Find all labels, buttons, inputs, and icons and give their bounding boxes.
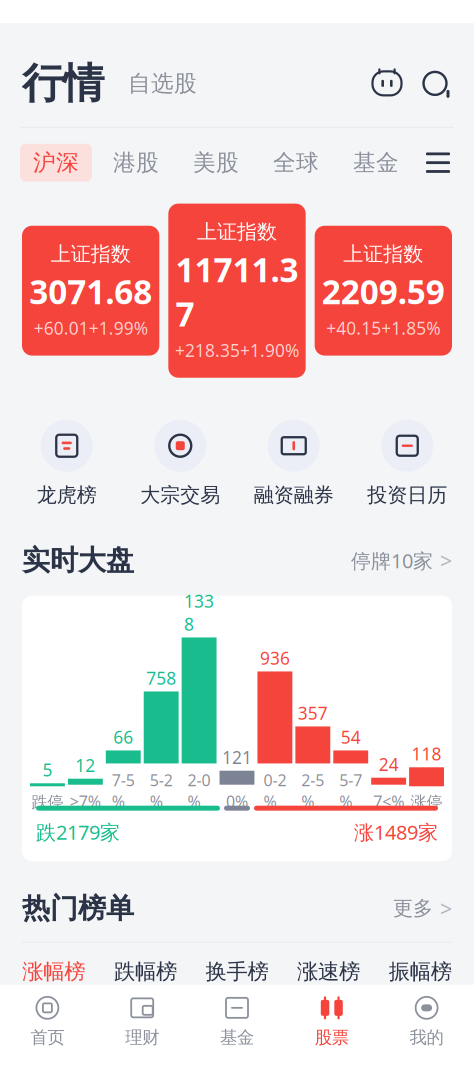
staticText: 涨幅榜 (22, 959, 85, 985)
staticText: 美股 (193, 149, 239, 177)
button[interactable]: 理财 (95, 995, 190, 1048)
staticText: 2209.59 (322, 269, 445, 314)
staticText: 跌停 (31, 792, 63, 812)
staticText: 上证指数 (51, 242, 131, 266)
button[interactable]: 搜索 (418, 66, 452, 100)
staticText: 121 (222, 746, 252, 769)
staticText: 停牌10家 (351, 547, 433, 574)
button[interactable]: 港股 (100, 144, 172, 182)
staticText: 上证指数 (197, 220, 277, 244)
button[interactable]: 沪深 (20, 144, 92, 182)
staticText: 跌幅榜 (114, 959, 177, 985)
staticText: 0% (226, 791, 248, 812)
staticText: 跌2179家 (36, 819, 120, 845)
staticText: 振幅榜 (389, 959, 452, 985)
staticText: 758 (146, 666, 176, 689)
button[interactable]: 振幅榜 (374, 959, 466, 985)
staticText: 首页 (30, 1027, 64, 1048)
button[interactable]: 上证指数 (315, 226, 452, 355)
button[interactable]: 龙虎榜 (10, 420, 123, 507)
staticText: 2-0% (188, 769, 211, 812)
button[interactable]: 首页 (0, 995, 95, 1048)
staticText: 我的 (410, 1027, 444, 1048)
staticText: > (440, 546, 452, 575)
staticText: 行情 (22, 58, 104, 109)
staticText: 融资融券 (254, 483, 334, 507)
staticText: 5-2% (150, 769, 173, 812)
button[interactable]: 跌幅榜 (100, 959, 191, 985)
button[interactable]: 更多 (393, 894, 452, 923)
staticText: +40.15+1.85% (326, 317, 440, 340)
staticText: 基金 (220, 1027, 254, 1048)
staticText: 357 (298, 701, 328, 724)
staticText: 54 (341, 725, 361, 748)
button[interactable]: 全部分类 (422, 146, 454, 180)
button[interactable]: 上证指数 (168, 204, 306, 378)
staticText: 1338 (184, 589, 214, 635)
staticText: 股票 (315, 1027, 349, 1048)
staticText: 沪深 (33, 149, 79, 177)
button[interactable]: 涨速榜 (283, 959, 374, 985)
staticText: 实时大盘 (22, 543, 134, 578)
staticText: 12 (75, 754, 95, 777)
staticText: 涨停 (410, 792, 442, 812)
staticText: 11711.37 (175, 247, 298, 336)
button[interactable]: 基金 (340, 144, 412, 182)
button[interactable]: 投资日历 (350, 420, 464, 507)
button[interactable]: 股票 (284, 995, 379, 1048)
staticText: 5 (42, 758, 52, 781)
staticText: 大宗交易 (140, 483, 220, 507)
staticText: 理财 (125, 1027, 159, 1048)
button[interactable]: 美股 (180, 144, 252, 182)
staticText: 24 (379, 753, 399, 776)
staticText: 热门榜单 (22, 891, 134, 926)
button[interactable]: 我的 (379, 995, 474, 1048)
button[interactable]: 涨幅榜 (8, 959, 100, 985)
button[interactable]: 融资融券 (237, 420, 350, 507)
staticText: 0-2% (263, 769, 286, 812)
staticText: +60.01+1.99% (34, 317, 148, 340)
staticText: 自选股 (128, 69, 197, 97)
staticText: 全球 (273, 149, 319, 177)
button[interactable]: 大宗交易 (123, 420, 237, 507)
staticText: 5-7% (339, 769, 362, 812)
button[interactable]: 智能助手 (370, 66, 404, 100)
staticText: 龙虎榜 (37, 483, 97, 507)
staticText: 7-5% (112, 769, 135, 812)
staticText: > (440, 894, 452, 923)
button[interactable]: 停牌10家 (351, 546, 452, 575)
button[interactable]: 换手榜 (191, 959, 283, 985)
staticText: 投资日历 (367, 483, 447, 507)
staticText: 7<% (373, 791, 404, 812)
staticText: 更多 (393, 896, 433, 921)
staticText: 涨速榜 (297, 959, 360, 985)
staticText: 涨1489家 (354, 819, 438, 845)
staticText: >7% (70, 791, 101, 812)
staticText: 换手榜 (205, 959, 268, 985)
staticText: 3071.68 (29, 269, 152, 314)
button[interactable]: 上证指数 (22, 226, 159, 355)
staticText: 港股 (113, 149, 159, 177)
staticText: 基金 (353, 149, 399, 177)
staticText: 936 (260, 646, 290, 669)
button[interactable]: 全球 (260, 144, 332, 182)
staticText: 66 (113, 725, 133, 748)
staticText: +218.35+1.90% (175, 339, 299, 362)
staticText: 118 (411, 742, 441, 765)
staticText: 2-5% (301, 769, 324, 812)
staticText: 上证指数 (343, 242, 423, 266)
button[interactable]: 基金 (190, 995, 284, 1048)
